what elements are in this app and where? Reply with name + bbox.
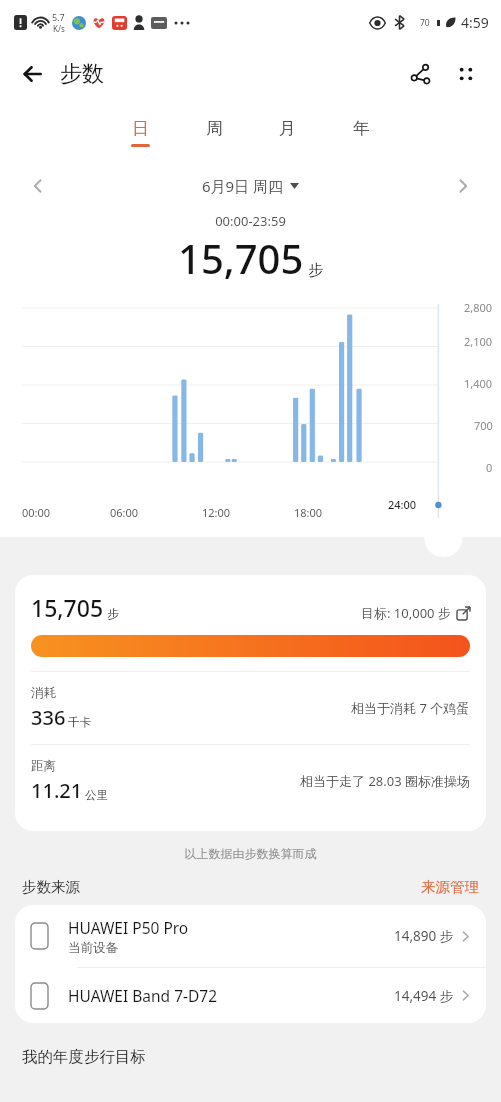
button[interactable]: 月 [267,104,307,160]
staticText: K/s [53,23,65,34]
staticText: 来源管理 [421,878,479,896]
staticText: 公里 [85,788,108,802]
staticText: 2,800 [464,300,493,315]
staticText: 目标: 10,000 步 [361,604,451,622]
staticText: 12:00 [202,505,231,520]
staticText: 千卡 [68,715,91,729]
button[interactable]: More options [445,53,487,95]
staticText: 日 [132,118,149,139]
staticText: HUAWEI P50 Pro [68,917,189,938]
staticText: 0 [486,460,493,475]
button[interactable]: Previous day [18,166,58,206]
staticText: 4:59 [461,13,489,32]
staticText: 18:00 [294,505,323,520]
staticText: 距离 [31,758,56,774]
staticText: 消耗 [31,685,56,701]
staticText: 2,100 [464,334,493,349]
staticText: 步数 [60,60,104,88]
staticText: 14,890 步 [394,927,454,945]
staticText: 00:00-23:59 [0,212,501,230]
staticText: 我的年度步行目标 [22,1047,146,1067]
button[interactable]: HUAWEI Band 7-D72 [15,968,486,1023]
button[interactable]: Back [10,51,56,97]
button[interactable]: 来源管理 [421,878,479,896]
staticText: 06:00 [110,505,139,520]
staticText: 15,705 [178,231,304,285]
staticText: 6月9日 周四 [202,176,284,196]
staticText: 周 [206,118,223,139]
button[interactable]: 目标: 10,000 步 [361,604,470,623]
button[interactable]: 6月9日 周四 [202,176,299,196]
staticText: 15,705 [31,592,104,623]
staticText: 00:00 [22,505,51,520]
button[interactable]: Next day [443,166,483,206]
staticText: 步 [107,606,119,621]
staticText: 70 [420,17,430,28]
staticText: 当前设备 [68,940,118,956]
staticText: 步 [308,261,323,280]
button[interactable]: 年 [341,104,381,160]
staticText: 11.21 [31,777,83,804]
staticText: 5.7 [52,11,65,23]
staticText: HUAWEI Band 7-D72 [68,985,218,1006]
staticText: 月 [279,118,296,139]
staticText: 以上数据由步数换算而成 [0,846,501,861]
staticText: 700 [474,418,493,433]
staticText: 步数来源 [22,878,80,896]
button[interactable]: 消耗 [31,672,470,744]
button[interactable]: HUAWEI P50 Pro [15,905,486,967]
button[interactable]: 周 [194,104,234,160]
staticText: 相当于走了 28.03 圈标准操场 [300,772,470,790]
button[interactable]: 距离 [31,745,470,817]
staticText: 336 [31,704,66,731]
staticText: 年 [353,118,370,139]
button[interactable]: Share [399,53,441,95]
staticText: 14,494 步 [394,987,454,1005]
button[interactable]: 日 [120,104,160,160]
staticText: 1,400 [464,376,493,391]
staticText: 相当于消耗 7 个鸡蛋 [351,699,470,717]
staticText: 24:00 [388,497,417,512]
